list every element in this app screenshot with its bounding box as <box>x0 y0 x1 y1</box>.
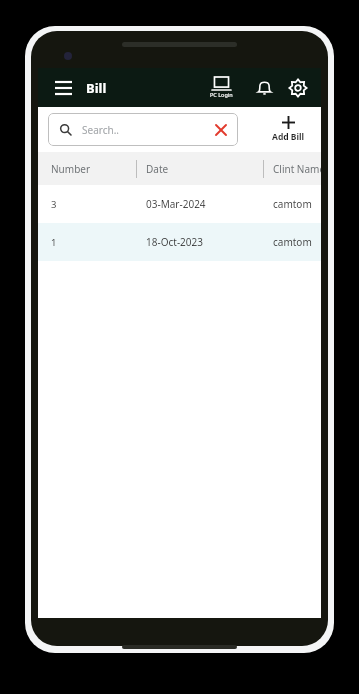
staticText: 1 <box>51 236 57 249</box>
staticText: Number <box>51 162 91 176</box>
button[interactable]: Menu <box>48 73 78 103</box>
staticText: Bill <box>86 79 107 97</box>
button[interactable]: Search.. <box>48 113 238 146</box>
staticText: camtom <box>273 235 312 249</box>
staticText: 03-Mar-2024 <box>146 197 206 211</box>
button[interactable]: Add Bill <box>262 116 315 143</box>
button[interactable]: PC Login <box>204 77 239 98</box>
staticText: 18-Oct-2023 <box>146 235 203 249</box>
staticText: Add Bill <box>272 131 305 143</box>
staticText: Date <box>146 162 169 176</box>
button[interactable]: Settings <box>285 75 311 101</box>
button[interactable]: 3 <box>38 185 321 223</box>
staticText: Search.. <box>82 123 120 137</box>
staticText: Clint Name <box>273 162 321 176</box>
staticText: camtom <box>273 197 312 211</box>
button[interactable]: Notifications <box>251 75 277 101</box>
button[interactable]: Clear search <box>210 119 232 141</box>
staticText: 3 <box>51 198 57 211</box>
staticText: PC Login <box>210 91 233 98</box>
button[interactable]: 1 <box>38 223 321 261</box>
